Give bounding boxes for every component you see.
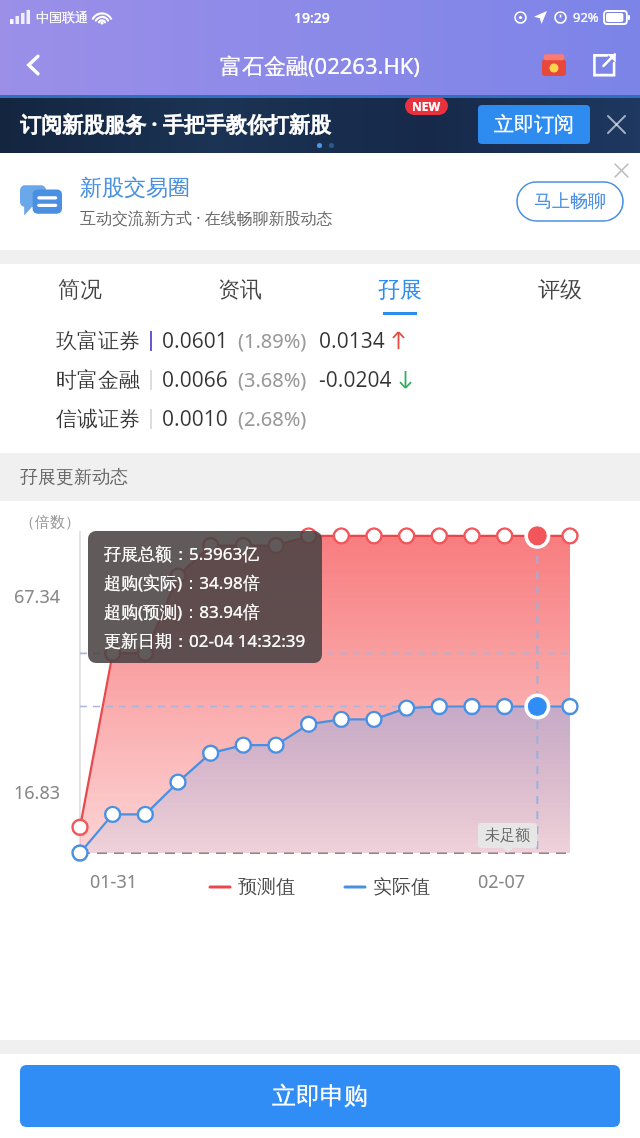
button[interactable]: 立即申购 — [20, 1065, 620, 1127]
button[interactable]: Close — [608, 157, 634, 183]
staticText: 时富金融 — [56, 367, 140, 393]
staticText: 简况 — [58, 276, 102, 304]
button[interactable]: Red packet — [532, 43, 576, 87]
staticText: 92% — [573, 8, 599, 26]
staticText: 孖展更新动态 — [20, 466, 128, 489]
button[interactable]: 立即订阅 — [478, 105, 590, 144]
button[interactable]: Share — [582, 43, 626, 87]
staticText: 订阅新股服务 · 手把手教你打新股 — [20, 110, 331, 139]
staticText: 新股交易圈 — [80, 174, 190, 202]
staticText: 信诚证券 — [56, 406, 140, 432]
staticText: 富石金融(02263.HK) — [220, 50, 420, 80]
staticText: 02-07 — [478, 869, 525, 894]
staticText: 马上畅聊 — [534, 190, 606, 213]
staticText: 超购(预测)：83.94倍 — [104, 600, 260, 623]
staticText: 更新日期：02-04 14:32:39 — [104, 629, 306, 652]
staticText: 01-31 — [90, 869, 137, 894]
staticText: (1.89%) — [238, 327, 307, 354]
staticText: 资讯 — [218, 276, 262, 304]
button[interactable]: 简况 — [0, 264, 160, 326]
button[interactable]: 时富金融 — [56, 365, 640, 394]
staticText: 19:29 — [294, 8, 330, 27]
staticText: 0.0010 — [162, 404, 228, 433]
staticText: 中国联通 — [36, 9, 88, 25]
staticText: 实际值 — [373, 875, 430, 899]
button[interactable]: 评级 — [480, 264, 640, 326]
staticText: 立即申购 — [272, 1081, 368, 1111]
button[interactable]: Back — [6, 37, 62, 93]
staticText: NEW — [412, 98, 441, 114]
button[interactable]: 玖富证券 — [56, 326, 640, 355]
staticText: 孖展 — [378, 276, 422, 304]
staticText: 0.0066 — [162, 365, 228, 394]
staticText: 16.83 — [14, 780, 61, 805]
staticText: 立即订阅 — [494, 112, 574, 137]
staticText: 0.0601 — [162, 326, 228, 355]
staticText: (2.68%) — [238, 405, 307, 432]
staticText: 超购(实际)：34.98倍 — [104, 571, 260, 594]
button[interactable]: 订阅新股服务 · 手把手教你打新股 — [0, 95, 640, 153]
staticText: (3.68%) — [238, 366, 307, 393]
button[interactable]: 孖展 — [320, 264, 480, 326]
button[interactable]: 新股交易圈 — [0, 153, 640, 250]
staticText: 孖展总额：5.3963亿 — [104, 542, 260, 565]
staticText: 67.34 — [14, 584, 61, 609]
staticText: 未足额 — [485, 826, 530, 845]
staticText: 玖富证券 — [56, 328, 140, 354]
staticText: -0.0204 — [319, 365, 392, 394]
button[interactable]: 马上畅聊 — [516, 181, 624, 222]
button[interactable]: Close ad — [602, 110, 630, 138]
staticText: （倍数） — [20, 513, 80, 532]
button[interactable]: 资讯 — [160, 264, 320, 326]
staticText: 评级 — [538, 276, 582, 304]
staticText: 0.0134 — [319, 326, 385, 355]
staticText: 互动交流新方式 · 在线畅聊新股动态 — [80, 207, 333, 229]
staticText: 预测值 — [238, 875, 295, 899]
button[interactable]: 信诚证券 — [56, 404, 640, 433]
